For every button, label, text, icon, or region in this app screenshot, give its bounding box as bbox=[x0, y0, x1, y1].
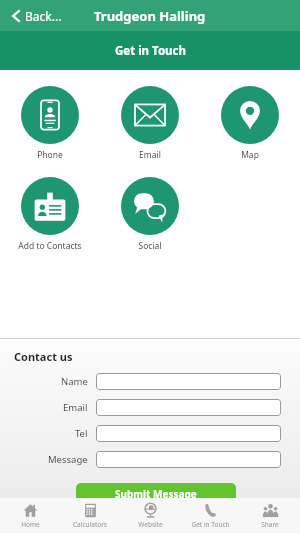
button[interactable]: Home bbox=[0, 498, 60, 533]
button[interactable] bbox=[96, 425, 281, 442]
staticText: Social bbox=[138, 240, 162, 252]
button[interactable] bbox=[96, 399, 281, 416]
button[interactable] bbox=[96, 373, 281, 390]
staticText: Message bbox=[48, 453, 88, 466]
staticText: Phone bbox=[37, 149, 63, 161]
staticText: Email bbox=[139, 149, 161, 161]
staticText: Contact us bbox=[14, 349, 73, 364]
button[interactable]: Calculators bbox=[60, 498, 120, 533]
button[interactable]: Map bbox=[200, 86, 300, 161]
button[interactable]: Get in Touch bbox=[0, 31, 300, 70]
staticText: Get in Touch bbox=[115, 43, 186, 59]
button[interactable]: Back... bbox=[10, 4, 64, 28]
staticText: Trudgeon Halling bbox=[94, 7, 206, 25]
staticText: Submit Message bbox=[115, 487, 197, 501]
button[interactable]: Get in Touch bbox=[180, 498, 240, 533]
staticText: Calculators bbox=[73, 520, 107, 529]
staticText: Map bbox=[241, 149, 259, 161]
staticText: Website bbox=[138, 520, 163, 529]
staticText: Get in Touch bbox=[191, 520, 230, 529]
staticText: Home bbox=[21, 520, 40, 529]
button[interactable]: Email bbox=[100, 86, 200, 161]
button[interactable]: Submit Message bbox=[76, 483, 236, 505]
button[interactable] bbox=[96, 451, 281, 468]
staticText: Email bbox=[63, 401, 88, 414]
button[interactable]: Website bbox=[120, 498, 180, 533]
staticText: Add to Contacts bbox=[18, 240, 82, 252]
staticText: Share bbox=[261, 520, 279, 529]
button[interactable]: Social bbox=[100, 177, 200, 252]
button[interactable]: Phone bbox=[0, 86, 100, 161]
button[interactable]: Add to Contacts bbox=[0, 177, 100, 252]
button[interactable]: Share bbox=[240, 498, 300, 533]
staticText: Back... bbox=[25, 8, 62, 24]
staticText: Tel bbox=[75, 427, 88, 440]
staticText: Name bbox=[61, 375, 88, 388]
